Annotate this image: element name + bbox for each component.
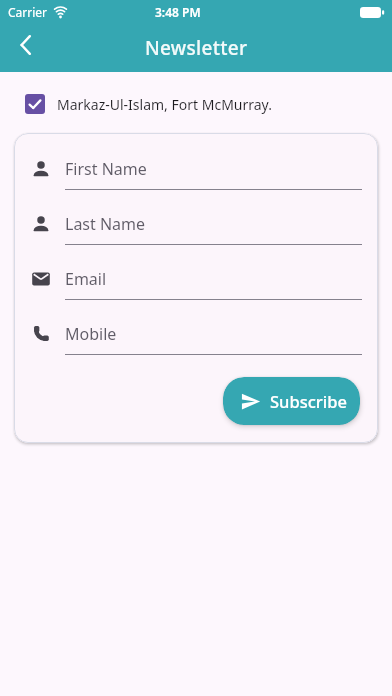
staticText: 3:48 PM	[155, 4, 201, 20]
button[interactable]: Subscribe	[223, 377, 360, 425]
staticText: Last Name	[65, 213, 146, 235]
staticText: First Name	[65, 158, 147, 180]
staticText: Subscribe	[270, 390, 347, 412]
staticText: Carrier	[8, 4, 48, 20]
staticText: Newsletter	[145, 35, 248, 61]
button[interactable]: Markaz-Ul-Islam, Fort McMurray.	[25, 94, 392, 114]
staticText: Mobile	[65, 323, 117, 345]
staticText: Markaz-Ul-Islam, Fort McMurray.	[57, 95, 272, 114]
button[interactable]	[10, 29, 42, 61]
staticText: Email	[65, 268, 107, 290]
